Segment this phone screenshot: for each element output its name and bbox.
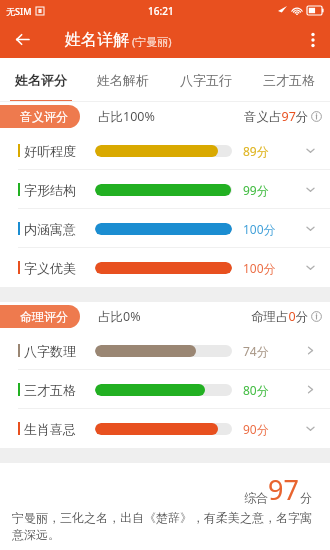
button[interactable]: More options — [296, 21, 330, 58]
staticText: 分 — [300, 490, 312, 505]
button[interactable]: 生肖喜忌 — [0, 409, 330, 448]
staticText: 内涵寓意 — [24, 221, 76, 237]
staticText: 三才五格 — [24, 382, 76, 398]
button[interactable]: 好听程度 — [0, 131, 330, 170]
button[interactable]: 八字数理 — [0, 331, 330, 370]
staticText: 无SIM — [6, 5, 32, 17]
button[interactable]: 音义评分 — [0, 105, 80, 128]
staticText: 姓名详解 — [65, 30, 129, 50]
button[interactable]: 内涵寓意 — [0, 209, 330, 248]
button[interactable]: 姓名评分 — [0, 58, 82, 102]
staticText: 100分 — [243, 221, 276, 237]
staticText: 90分 — [243, 421, 269, 437]
button[interactable]: Back — [0, 21, 44, 58]
staticText: 好听程度 — [24, 143, 76, 159]
button[interactable]: 字义优美 — [0, 248, 330, 287]
staticText: 74分 — [243, 343, 269, 359]
staticText: 八字五行 — [180, 72, 232, 88]
button[interactable]: 字形结构 — [0, 170, 330, 209]
staticText: 命理评分 — [20, 309, 68, 324]
staticText: 音义评分 — [20, 109, 68, 124]
staticText: 姓名评分 — [15, 72, 67, 88]
staticText: 占比100% — [98, 108, 155, 125]
staticText: 字形结构 — [24, 182, 76, 198]
staticText: 生肖喜忌 — [24, 421, 76, 437]
staticText: 占比0% — [98, 308, 141, 325]
staticText: 16:21 — [148, 4, 174, 18]
button[interactable]: 三才五格 — [247, 58, 330, 102]
staticText: 宁曼丽，三化之名，出自《楚辞》，有柔美之意，名字寓意深远。 — [12, 510, 318, 543]
staticText: 姓名解析 — [97, 72, 149, 88]
staticText: (宁曼丽) — [132, 34, 172, 49]
staticText: 99分 — [243, 182, 269, 198]
staticText: 命理占0分 — [251, 308, 309, 325]
staticText: 音义占97分 — [244, 108, 309, 125]
staticText: 综合 — [244, 490, 268, 505]
staticText: 100分 — [243, 260, 276, 276]
staticText: 89分 — [243, 143, 269, 159]
staticText: 80分 — [243, 382, 269, 398]
staticText: 字义优美 — [24, 260, 76, 276]
staticText: 八字数理 — [24, 343, 76, 359]
staticText: 97 — [268, 471, 299, 508]
button[interactable]: 命理评分 — [0, 305, 80, 328]
button[interactable]: 命理占0分 — [251, 308, 322, 325]
button[interactable]: 姓名解析 — [82, 58, 164, 102]
button[interactable]: 音义占97分 — [244, 108, 322, 125]
staticText: 三才五格 — [263, 72, 315, 88]
button[interactable]: 八字五行 — [164, 58, 247, 102]
button[interactable]: 三才五格 — [0, 370, 330, 409]
